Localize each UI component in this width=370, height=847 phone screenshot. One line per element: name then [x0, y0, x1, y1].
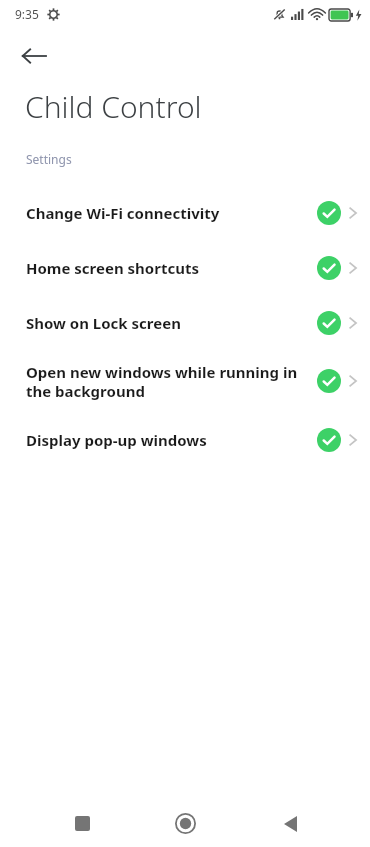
button[interactable]: Back [12, 34, 56, 78]
staticText: 9:35 [15, 6, 39, 22]
staticText: Show on Lock screen [26, 313, 303, 333]
button[interactable]: Home [124, 800, 247, 847]
staticText: Home screen shortcuts [26, 258, 303, 278]
button[interactable]: Back [247, 800, 370, 847]
button[interactable]: Home screen shortcuts [0, 240, 370, 295]
staticText: Display pop-up windows [26, 430, 303, 450]
button[interactable]: Change Wi-Fi connectivity [0, 185, 370, 240]
staticText: Settings [26, 151, 72, 167]
button[interactable]: Open new windows while running in the ba… [0, 350, 370, 412]
button[interactable]: Display pop-up windows [0, 412, 370, 467]
button[interactable]: Recent apps [0, 800, 124, 847]
staticText: Open new windows while running in the ba… [26, 362, 303, 401]
button[interactable]: Show on Lock screen [0, 295, 370, 350]
staticText: Child Control [25, 86, 202, 127]
staticText: Change Wi-Fi connectivity [26, 203, 303, 223]
